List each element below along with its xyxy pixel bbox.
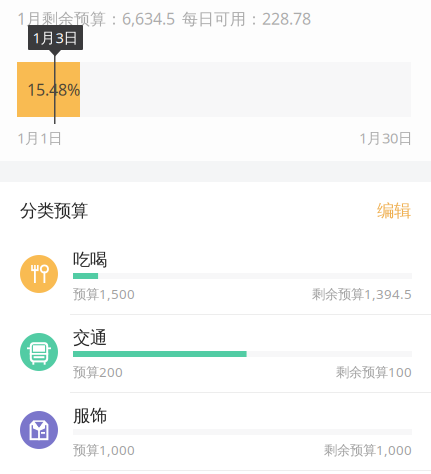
staticText: 15.48% (27, 79, 80, 100)
button[interactable]: 吃喝 (0, 237, 431, 315)
button[interactable]: 服饰 (0, 393, 431, 471)
staticText: 1月30日 (359, 128, 413, 147)
staticText: 预算200 (73, 363, 123, 381)
staticText: 交通 (73, 327, 107, 348)
staticText: 吃喝 (73, 249, 107, 270)
staticText: 剩余预算1,000 (324, 441, 412, 459)
staticText: 剩余预算1,394.5 (312, 285, 412, 303)
staticText: 服饰 (73, 405, 107, 426)
staticText: 每日可用：228.78 (182, 8, 311, 29)
staticText: 1月3日 (32, 28, 78, 47)
staticText: 预算1,000 (73, 441, 135, 459)
button[interactable]: 编辑 (377, 200, 411, 221)
staticText: 1月1日 (17, 128, 63, 147)
button[interactable]: 交通 (0, 315, 431, 393)
staticText: 1月剩余预算：6,634.5 (17, 8, 175, 29)
staticText: 预算1,500 (73, 285, 135, 303)
staticText: 剩余预算100 (336, 363, 412, 381)
staticText: 分类预算 (20, 200, 88, 221)
staticText: 编辑 (377, 200, 411, 221)
